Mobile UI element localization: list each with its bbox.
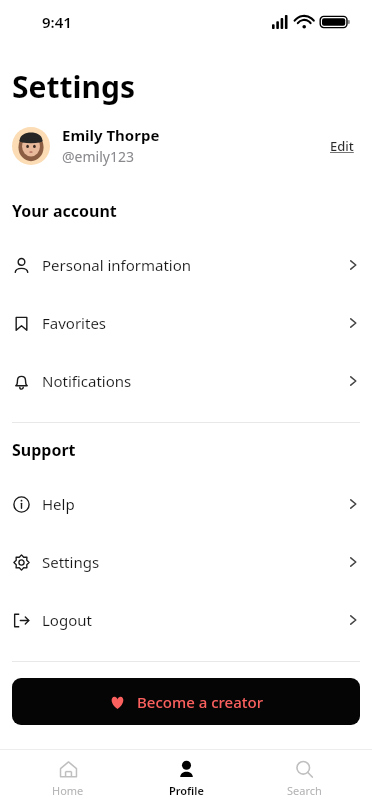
button[interactable]: Favorites (0, 294, 372, 352)
staticText: @emily123 (62, 147, 134, 166)
staticText: Profile (169, 783, 204, 798)
button[interactable]: Edit (324, 131, 360, 161)
button[interactable]: Settings (0, 533, 372, 591)
staticText: Home (52, 783, 84, 798)
staticText: Search (287, 783, 322, 798)
button[interactable]: Logout (0, 591, 372, 649)
button[interactable]: Notifications (0, 352, 372, 410)
staticText: Edit (330, 137, 354, 155)
staticText: Notifications (42, 371, 346, 391)
staticText: Favorites (42, 313, 346, 333)
button[interactable]: Help (0, 475, 372, 533)
button[interactable]: Emily Thorpe (0, 125, 372, 166)
staticText: 9:41 (42, 12, 72, 32)
button[interactable]: Become a creator (12, 678, 360, 725)
staticText: Settings (42, 552, 346, 572)
staticText: Support (12, 439, 76, 461)
staticText: Emily Thorpe (62, 125, 160, 145)
button[interactable]: Search (254, 755, 354, 802)
button[interactable]: Home (18, 755, 118, 802)
staticText: Your account (12, 200, 117, 222)
staticText: Personal information (42, 255, 346, 275)
button[interactable]: Personal information (0, 236, 372, 294)
staticText: Logout (42, 610, 346, 630)
staticText: Help (42, 494, 346, 514)
button[interactable]: Profile (136, 755, 236, 802)
staticText: Become a creator (137, 692, 264, 712)
staticText: Settings (12, 66, 135, 107)
